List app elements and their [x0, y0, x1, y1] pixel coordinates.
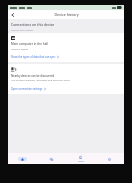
- staticText: Active: [78, 160, 84, 163]
- button[interactable]: Show the types of data that can sync: [11, 55, 121, 59]
- staticText: This includes speakers, wearables and ac…: [11, 79, 70, 82]
- button[interactable]: Main computer in the hall: [8, 33, 124, 62]
- button[interactable]: Settings: [95, 153, 124, 164]
- button[interactable]: Open connection settings: [11, 87, 121, 91]
- staticText: Main computer in the hall: [11, 42, 48, 46]
- button[interactable]: Activity: [66, 153, 95, 164]
- staticText: Show the types of data that can sync: [11, 55, 56, 59]
- staticText: Last 30 days activity: [11, 28, 34, 31]
- staticText: Connections on this device: [11, 22, 55, 27]
- staticText: Linked 2 weeks: [11, 47, 29, 50]
- button[interactable]: Phone device: [8, 64, 124, 94]
- staticText: Device history: [54, 12, 79, 17]
- button[interactable]: Back: [9, 11, 17, 19]
- staticText: Nearby devices can be discovered: [11, 74, 55, 78]
- button[interactable]: Devices: [37, 153, 66, 164]
- staticText: Open connection settings: [11, 87, 43, 91]
- other: Phone device: [11, 67, 16, 72]
- button[interactable]: Home: [8, 153, 37, 164]
